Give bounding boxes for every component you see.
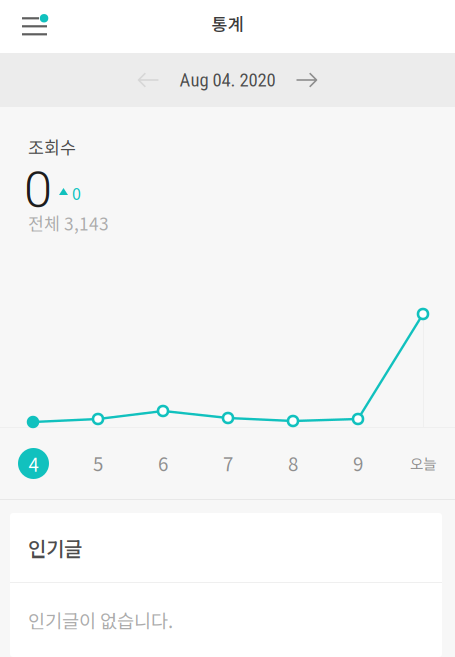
staticText: Aug 04. 2020 [179,69,275,91]
staticText: 4 [28,450,38,477]
staticText: 7 [223,449,233,476]
staticText: 9 [353,449,363,476]
staticText: 6 [158,449,168,476]
staticText: 5 [93,449,103,476]
staticText: 인기글이 없습니다. [28,606,173,633]
staticText: 조회수 [28,134,76,160]
button[interactable]: Next day [285,61,327,99]
staticText: 인기글 [28,533,82,562]
staticText: 8 [288,449,298,476]
button[interactable]: Menu [0,4,64,49]
staticText: 통계 [211,11,243,36]
button[interactable]: Previous day [127,61,169,99]
staticText: 전체 3,143 [28,210,109,236]
staticText: 0 [72,181,81,205]
staticText: 0 [24,160,52,220]
staticText: 오늘 [410,452,436,474]
